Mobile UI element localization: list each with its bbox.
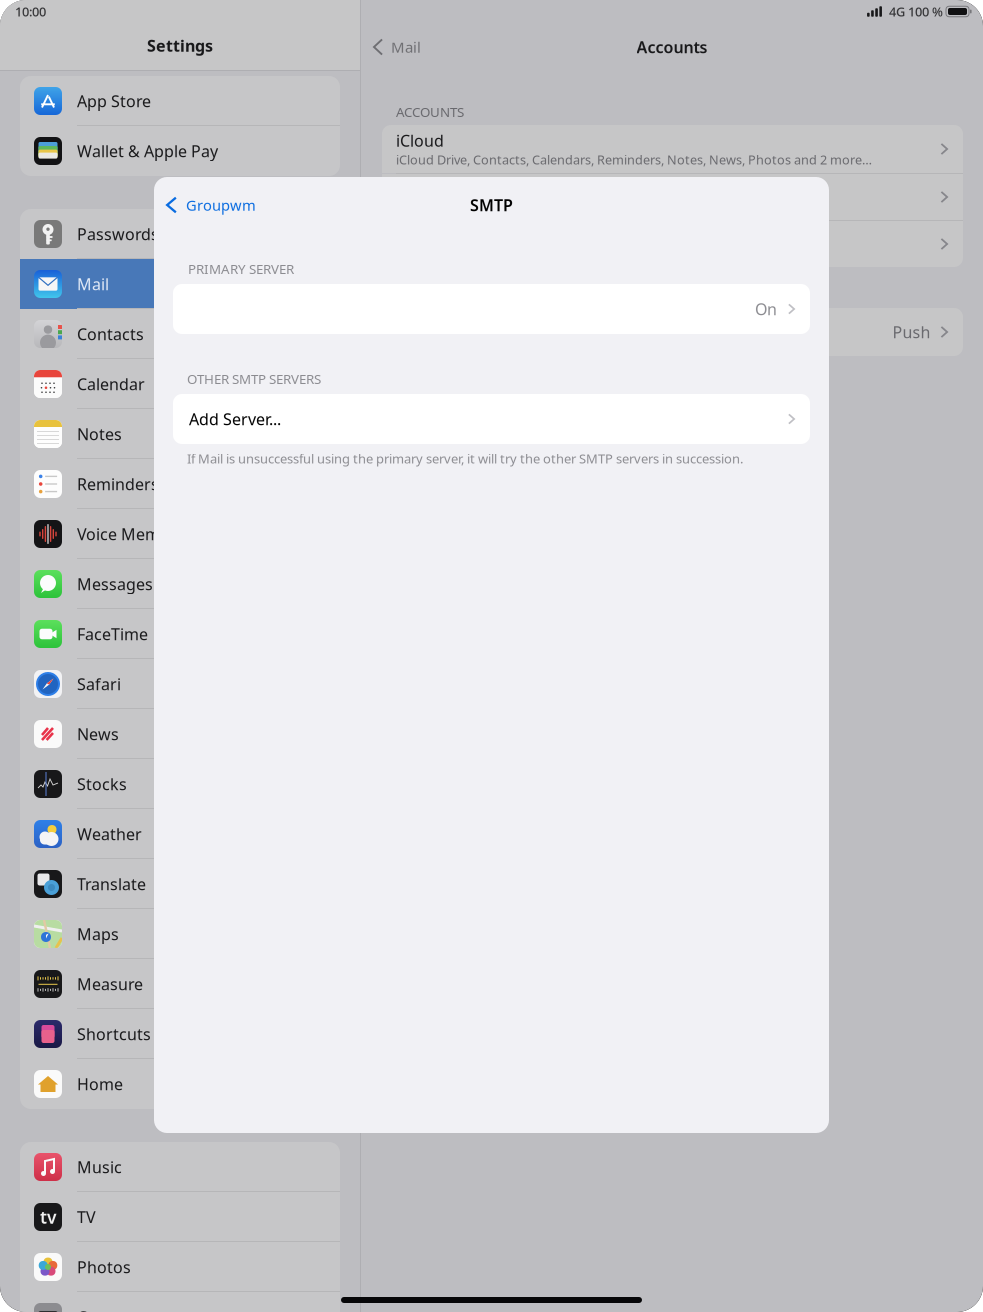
staticText: Mail [77,273,109,295]
staticText: iCloud [396,130,444,151]
button[interactable] [382,221,963,267]
staticText: News [77,723,119,745]
staticText: Translate [77,873,146,895]
staticText: Push [892,321,930,343]
staticText: Maps [77,923,119,945]
button[interactable]: Passwords [20,209,340,259]
button[interactable]: Notes [20,409,340,459]
staticText: Camera [77,1306,135,1312]
button[interactable]: Contacts [20,309,340,359]
staticText: Shortcuts [77,1023,151,1045]
staticText: 4G 100 % [889,3,943,20]
staticText: Groupwm [186,195,256,215]
staticText: TV [77,1206,96,1228]
staticText: Photos [77,1256,131,1278]
button[interactable]: Music [20,1142,340,1192]
staticText: SMTP [470,194,513,216]
staticText: Accounts [636,36,707,58]
staticText: Measure [77,973,143,995]
staticText: Wallet & Apple Pay [77,140,218,162]
button[interactable]: Calendar [20,359,340,409]
button[interactable]: Safari [20,659,340,709]
button[interactable]: Reminders [20,459,340,509]
button[interactable] [382,174,963,220]
button[interactable]: Push [382,308,963,356]
button[interactable]: iCloud [382,125,963,173]
staticText: PRIMARY SERVER [188,260,294,278]
button[interactable]: Mail [20,259,340,309]
staticText: If Mail is unsuccessful using the primar… [187,450,743,467]
staticText: Messages [77,573,153,595]
button[interactable]: Weather [20,809,340,859]
button[interactable]: Camera [20,1292,340,1312]
button[interactable]: Home [20,1059,340,1109]
staticText: iCloud Drive, Contacts, Calendars, Remin… [396,151,872,168]
staticText: Calendar [77,373,145,395]
button[interactable]: Maps [20,909,340,959]
button[interactable]: Mail [361,30,431,64]
staticText: Mail [391,37,421,57]
button[interactable]: FaceTime [20,609,340,659]
button[interactable]: Photos [20,1242,340,1292]
staticText: Settings [147,35,213,56]
button[interactable]: Translate [20,859,340,909]
button[interactable]: tv [20,1192,340,1242]
staticText: Safari [77,673,121,695]
staticText: Voice Memos [77,523,178,545]
staticText: App Store [77,90,151,112]
staticText: FaceTime [77,623,148,645]
staticText: tv [40,1205,56,1228]
staticText: Music [77,1156,122,1178]
button[interactable]: Messages [20,559,340,609]
staticText: Add Server... [189,408,281,430]
staticText: Passwords [77,223,159,245]
staticText: Stocks [77,773,127,795]
button[interactable]: Stocks [20,759,340,809]
staticText: On [755,298,777,320]
staticText: 10:00 [15,3,46,20]
button[interactable]: News [20,709,340,759]
staticText: ACCOUNTS [396,103,464,121]
button[interactable]: Add Server... [173,394,810,444]
button[interactable]: On [173,284,810,334]
staticText: Weather [77,823,142,845]
staticText: Notes [77,423,122,445]
button[interactable]: Voice Memos [20,509,340,559]
button[interactable]: Groupwm [154,187,266,223]
staticText: OTHER SMTP SERVERS [187,370,321,388]
button[interactable]: Shortcuts [20,1009,340,1059]
button[interactable]: Measure [20,959,340,1009]
staticText: Home [77,1073,123,1095]
staticText: Contacts [77,323,144,345]
staticText: Reminders [77,473,159,495]
button[interactable]: App Store [20,76,340,126]
button[interactable]: Wallet & Apple Pay [20,126,340,176]
